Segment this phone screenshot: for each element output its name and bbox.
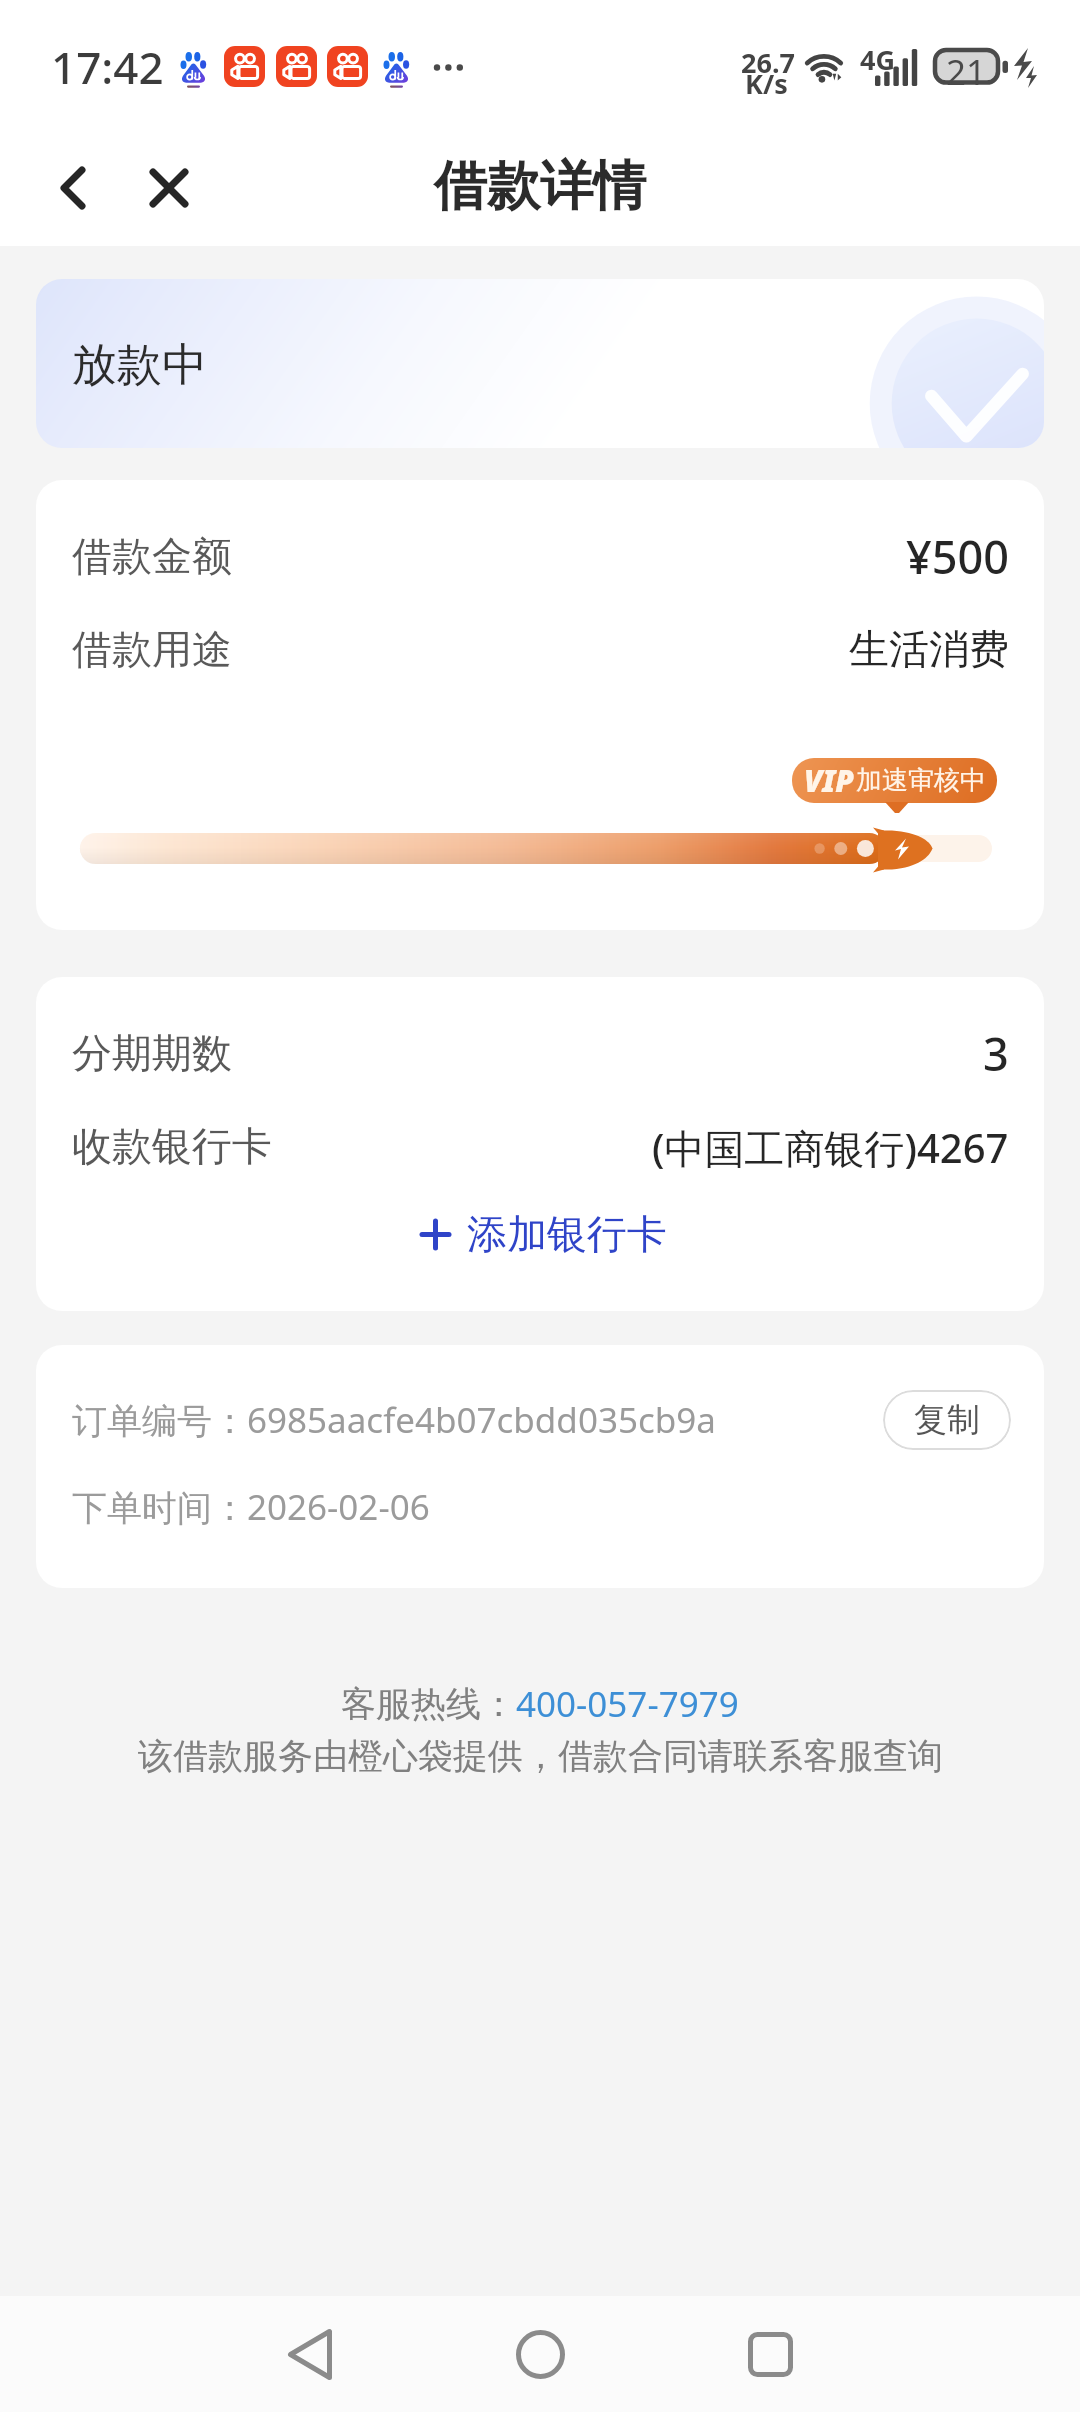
button[interactable]: 添加银行卡 — [421, 1189, 731, 1279]
button[interactable]: Home — [425, 2296, 655, 2412]
staticText: 借款详情 — [434, 153, 646, 220]
staticText: 订单编号：6985aacfe4b07cbdd035cb9a — [72, 1396, 716, 1444]
button[interactable]: Close — [124, 130, 214, 246]
staticText: 下单时间：2026-02-06 — [72, 1483, 430, 1531]
staticText: 该借款服务由橙心袋提供，借款合同请联系客服查询 — [138, 1734, 943, 1778]
button[interactable]: Back — [28, 130, 118, 246]
staticText: 借款用途 — [72, 624, 232, 674]
staticText: 收款银行卡 — [72, 1121, 272, 1171]
staticText: 加速审核中 — [856, 764, 986, 797]
staticText: 放款中 — [72, 337, 207, 394]
staticText: 分期期数 — [72, 1028, 232, 1078]
staticText: 21 — [946, 48, 987, 85]
staticText: ¥500 — [906, 526, 1009, 587]
staticText: K/s — [745, 65, 788, 102]
button[interactable]: 复制 — [883, 1390, 1011, 1450]
staticText: 生活消费 — [849, 624, 1009, 674]
button[interactable]: Recents — [655, 2296, 885, 2412]
staticText: (中国工商银行)4267 — [652, 1120, 1009, 1175]
staticText: 复制 — [914, 1399, 980, 1441]
button[interactable]: 400-057-7979 — [516, 1680, 739, 1728]
staticText: 3 — [983, 1023, 1009, 1084]
staticText: VIP — [804, 760, 854, 801]
staticText: 客服热线： — [341, 1682, 516, 1726]
staticText: 借款金额 — [72, 531, 232, 581]
staticText: 4G — [860, 41, 895, 78]
staticText: 添加银行卡 — [467, 1209, 667, 1259]
button[interactable]: Back — [195, 2296, 425, 2412]
staticText: 17:42 — [51, 37, 164, 97]
staticText: 26.7 — [741, 44, 795, 81]
